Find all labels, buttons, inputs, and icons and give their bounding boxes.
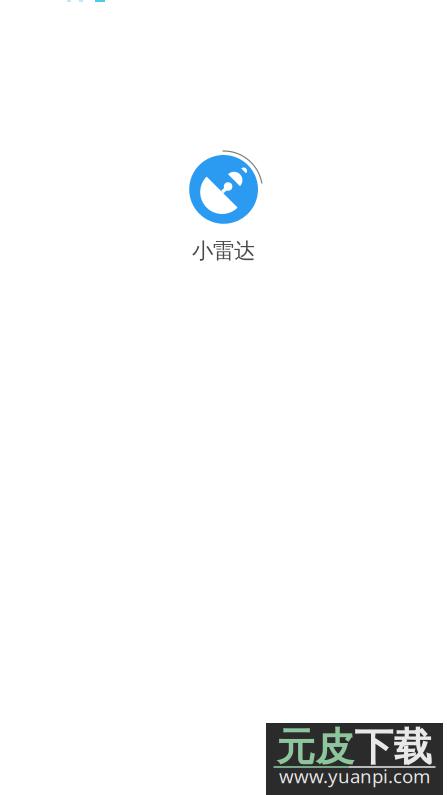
staticText: 下载	[354, 723, 432, 771]
staticText: 元皮	[276, 723, 354, 771]
staticText: www.yuanpi.com	[279, 764, 430, 788]
staticText: 小雷达	[192, 238, 255, 264]
